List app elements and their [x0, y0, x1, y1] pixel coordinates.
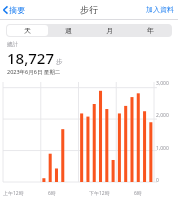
button[interactable]: Back — [0, 3, 30, 17]
staticText: 總計 — [7, 41, 18, 48]
button[interactable]: 月 — [89, 25, 130, 36]
button[interactable]: 加入資料 — [142, 2, 178, 17]
staticText: 摘要 — [9, 5, 25, 15]
staticText: 年 — [147, 26, 154, 35]
button[interactable]: 週 — [48, 25, 89, 36]
staticText: 步 — [56, 58, 63, 66]
staticText: 3,000 — [156, 80, 169, 87]
staticText: 月 — [106, 26, 113, 35]
staticText: 1,000 — [156, 145, 169, 152]
staticText: 步行 — [80, 4, 98, 15]
staticText: 加入資料 — [146, 5, 174, 14]
staticText: 下午12時 — [89, 190, 110, 197]
staticText: 2023年6月6日 星期二 — [7, 68, 61, 76]
other: Back — [3, 6, 8, 14]
staticText: 天 — [24, 26, 31, 35]
button[interactable]: 天 — [7, 25, 48, 36]
staticText: 6時 — [48, 190, 56, 197]
staticText: 上午12時 — [3, 190, 24, 197]
staticText: 6時 — [134, 190, 142, 197]
staticText: 週 — [65, 26, 72, 35]
button[interactable]: 年 — [130, 25, 171, 36]
staticText: 2,000 — [156, 112, 169, 119]
staticText: 18,727 — [7, 48, 54, 68]
staticText: 0 — [156, 177, 159, 184]
